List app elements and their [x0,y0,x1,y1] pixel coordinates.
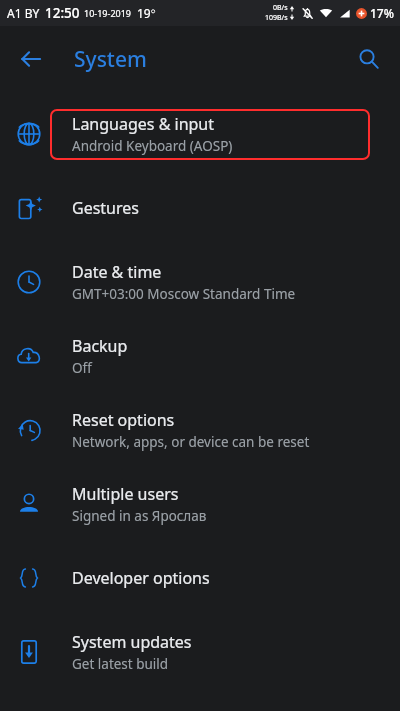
button[interactable]: Multiple users [0,467,400,541]
staticText: Backup [72,335,128,357]
staticText: 0B/s [273,3,288,13]
staticText: 12:50 [45,4,80,22]
button[interactable]: Reset options [0,393,400,467]
button[interactable]: Back [8,36,54,82]
staticText: GMT+03:00 Moscow Standard Time [72,285,296,303]
staticText: Signed in as Ярослав [72,507,207,525]
button[interactable]: Date & time [0,245,400,319]
button[interactable]: Search [346,36,392,82]
button[interactable]: Backup [0,319,400,393]
staticText: Get latest build [72,655,169,673]
staticText: System [74,45,147,74]
button[interactable]: Developer options [0,541,400,615]
staticText: Developer options [72,567,210,589]
staticText: Languages & input [72,113,215,135]
staticText: Reset options [72,409,175,431]
staticText: 109B/s [265,13,288,23]
staticText: 10-19-2019 [84,7,131,19]
staticText: Multiple users [72,483,179,505]
staticText: 17% [370,5,394,21]
staticText: Network, apps, or device can be reset [72,433,310,451]
staticText: A1 BY [7,5,40,21]
button[interactable]: Languages & input [0,97,400,171]
button[interactable]: System updates [0,615,400,689]
staticText: Android Keyboard (AOSP) [72,137,233,155]
staticText: System updates [72,631,192,653]
staticText: 19 [137,5,151,21]
staticText: Gestures [72,197,139,219]
button[interactable]: Gestures [0,171,400,245]
staticText: Date & time [72,261,162,283]
staticText: Off [72,359,92,377]
